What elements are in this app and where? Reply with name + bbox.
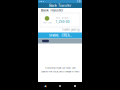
- staticText: Recording made can show and: [45, 66, 75, 69]
- button[interactable]: SHARE: [38, 32, 82, 38]
- staticText: bank logo: [42, 21, 51, 24]
- button[interactable]: Recents: [71, 82, 78, 90]
- staticText: 1,250.00: [55, 20, 69, 24]
- staticText: Bank Transfer: [41, 9, 63, 12]
- staticText: transfer pending: [62, 28, 79, 31]
- staticText: CREATE NEW: [61, 34, 71, 37]
- staticText: capture the value, and a change to help: [41, 70, 79, 73]
- staticText: Total amount: [55, 16, 68, 19]
- staticText: 9:41: [76, 0, 80, 3]
- button[interactable]: Home: [56, 82, 63, 90]
- button[interactable]: Back: [41, 82, 48, 90]
- staticText: ◀: [44, 84, 46, 88]
- staticText: SHARE: [49, 34, 58, 37]
- staticText: Bank Transfer: [49, 3, 71, 8]
